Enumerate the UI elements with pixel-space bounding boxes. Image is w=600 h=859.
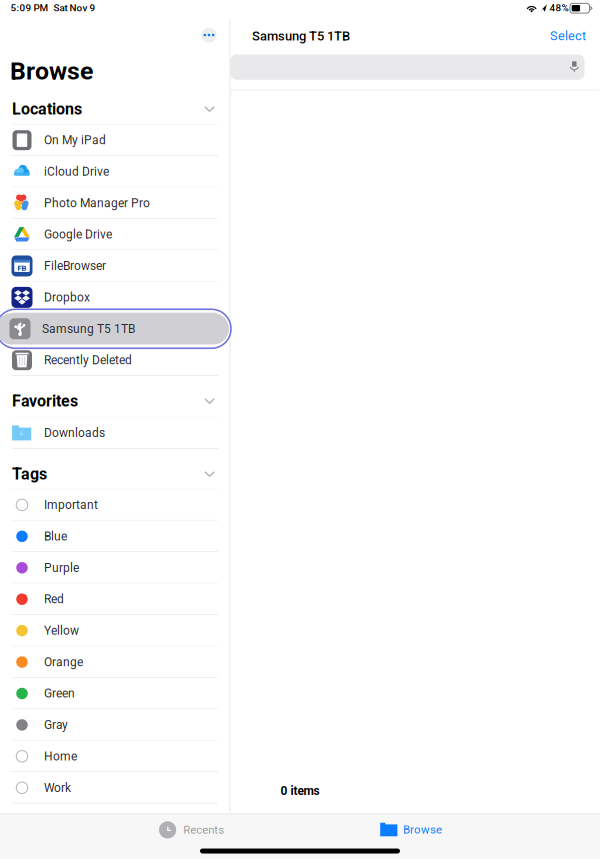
staticText: Tags bbox=[12, 465, 47, 483]
button[interactable]: Home bbox=[0, 741, 230, 772]
staticText: Browse bbox=[10, 56, 93, 86]
button[interactable]: iCloud Drive bbox=[0, 156, 230, 187]
button[interactable]: More bbox=[201, 27, 216, 42]
staticText: 5:09 PM bbox=[10, 2, 48, 14]
button[interactable]: Dropbox bbox=[0, 282, 230, 313]
staticText: Recently Deleted bbox=[44, 353, 132, 367]
staticText: Sat Nov 9 bbox=[53, 2, 95, 14]
button[interactable]: Purple bbox=[0, 552, 230, 583]
button[interactable]: Photo Manager Pro bbox=[0, 187, 230, 219]
button[interactable]: Select bbox=[545, 24, 591, 48]
button[interactable]: Important bbox=[0, 489, 230, 521]
button[interactable]: FB bbox=[0, 250, 230, 282]
button[interactable]: Collapse Favorites bbox=[198, 392, 221, 410]
staticText: Blue bbox=[44, 529, 67, 543]
staticText: 0 items bbox=[280, 784, 319, 798]
staticText: Yellow bbox=[44, 624, 79, 638]
button[interactable]: Recents bbox=[155, 817, 228, 842]
button[interactable]: Samsung T5 1TB bbox=[0, 310, 234, 348]
staticText: Gray bbox=[44, 718, 68, 732]
button[interactable]: Downloads bbox=[0, 417, 230, 449]
button[interactable]: Google Drive bbox=[0, 219, 230, 250]
staticText: Recents bbox=[183, 823, 224, 837]
staticText: Samsung T5 1TB bbox=[252, 28, 350, 44]
staticText: iCloud Drive bbox=[44, 165, 109, 179]
staticText: Favorites bbox=[12, 392, 78, 410]
staticText: Red bbox=[44, 592, 64, 606]
button[interactable]: On My iPad bbox=[0, 124, 230, 156]
staticText: Purple bbox=[44, 561, 79, 575]
staticText: On My iPad bbox=[44, 133, 106, 147]
button[interactable]: Browse bbox=[376, 818, 446, 841]
staticText: Select bbox=[550, 29, 586, 43]
staticText: FileBrowser bbox=[44, 259, 106, 273]
staticText: Work bbox=[44, 781, 71, 795]
staticText: 48% bbox=[549, 2, 568, 14]
button[interactable]: Red bbox=[0, 583, 230, 615]
button[interactable]: Yellow bbox=[0, 615, 230, 646]
staticText: Samsung T5 1TB bbox=[42, 322, 135, 336]
button[interactable]: Gray bbox=[0, 709, 230, 741]
staticText: Green bbox=[44, 686, 75, 701]
staticText: Orange bbox=[44, 655, 83, 669]
button[interactable]: Recently Deleted bbox=[0, 344, 230, 376]
button[interactable]: Collapse Tags bbox=[198, 465, 221, 483]
staticText: Locations bbox=[12, 100, 82, 118]
button[interactable]: Blue bbox=[0, 521, 230, 552]
button[interactable]: Collapse Locations bbox=[198, 100, 221, 118]
staticText: Downloads bbox=[44, 426, 105, 440]
staticText: Google Drive bbox=[44, 227, 112, 242]
staticText: Browse bbox=[403, 823, 442, 836]
staticText: Home bbox=[44, 749, 77, 763]
button[interactable]: Work bbox=[0, 772, 230, 803]
button[interactable]: Orange bbox=[0, 646, 230, 678]
staticText: Important bbox=[44, 498, 98, 512]
staticText: Dropbox bbox=[44, 290, 90, 304]
staticText: FB bbox=[17, 263, 26, 273]
button[interactable]: Green bbox=[0, 678, 230, 709]
staticText: Photo Manager Pro bbox=[44, 196, 150, 210]
